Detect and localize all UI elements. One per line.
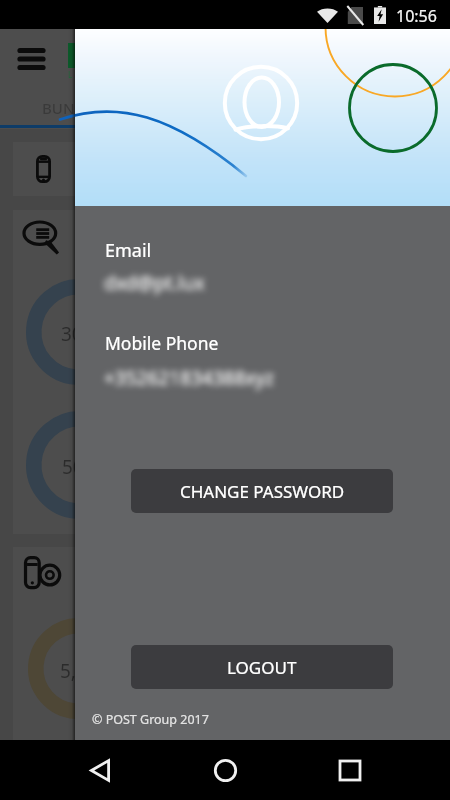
staticText: 5,0 xyxy=(60,658,87,684)
staticText: 30 xyxy=(61,321,83,347)
staticText: BUNDLES xyxy=(42,98,111,118)
staticText: Email xyxy=(105,238,152,263)
staticText: L xyxy=(68,69,73,80)
staticText: dxd@pt.lux xyxy=(104,270,205,296)
staticText: © POST Group 2017 xyxy=(92,711,209,728)
button[interactable]: Back xyxy=(76,746,124,794)
button[interactable]: CHANGE PASSWORD xyxy=(131,469,393,513)
staticText: 10:56 xyxy=(396,5,437,27)
staticText: +352621834388xyz xyxy=(104,365,274,391)
staticText: LOGOUT xyxy=(227,656,297,679)
staticText: CHANGE PASSWORD xyxy=(180,480,345,503)
button[interactable]: Recent apps xyxy=(326,746,374,794)
button[interactable]: LOGOUT xyxy=(131,645,393,689)
button[interactable]: Home xyxy=(201,746,249,794)
staticText: 50 xyxy=(62,454,84,480)
staticText: Mobile Phone xyxy=(105,331,219,355)
